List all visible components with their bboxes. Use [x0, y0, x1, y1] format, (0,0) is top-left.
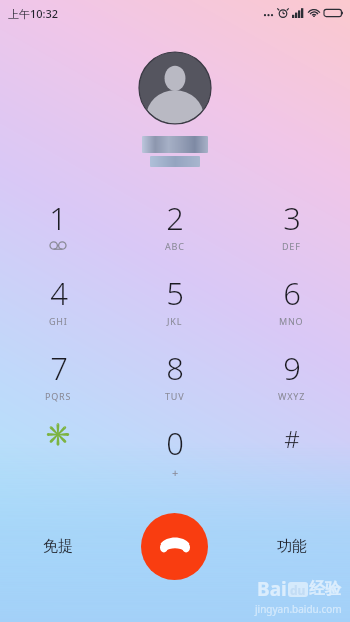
button[interactable]: # [233, 422, 350, 497]
staticText: ABC [165, 240, 185, 252]
button[interactable]: 9 [233, 347, 350, 422]
staticText: 免提 [43, 537, 73, 556]
staticText: WXYZ [278, 390, 306, 402]
staticText: GHI [49, 315, 68, 327]
staticText: jingyan.baidu.com [255, 602, 342, 616]
button[interactable]: 3 [233, 197, 350, 272]
staticText: # [284, 422, 300, 455]
staticText: DEF [282, 240, 301, 252]
button[interactable]: 5 [116, 272, 233, 347]
staticText: 3 [283, 197, 301, 239]
staticText: du [290, 582, 306, 597]
staticText: JKL [167, 315, 183, 327]
staticText: 7 [50, 347, 68, 389]
staticText: MNO [279, 315, 304, 327]
staticText: 4 [50, 272, 68, 314]
staticText: ✳ [44, 422, 72, 448]
button[interactable]: 8 [116, 347, 233, 422]
staticText: 功能 [277, 537, 307, 556]
staticText: 0 [166, 422, 184, 464]
staticText: 1 [49, 197, 67, 239]
button[interactable]: 免提 [0, 504, 116, 588]
staticText: 9 [283, 347, 301, 389]
button[interactable]: ✳ [0, 422, 116, 497]
button[interactable]: 7 [0, 347, 116, 422]
button[interactable]: 0 [116, 422, 233, 497]
button[interactable]: 6 [233, 272, 350, 347]
button[interactable]: 2 [116, 197, 233, 272]
button[interactable]: 1 [0, 197, 116, 272]
staticText: 经验 [309, 579, 341, 599]
staticText: TUV [165, 390, 185, 402]
button[interactable]: 功能 [233, 504, 350, 588]
staticText: + [172, 465, 179, 480]
staticText: PQRS [45, 390, 72, 402]
staticText: 6 [283, 272, 301, 314]
staticText: Bai [257, 576, 287, 602]
staticText: 上午10:32 [8, 6, 59, 21]
staticText: 8 [166, 347, 184, 389]
button[interactable]: End call [141, 513, 208, 580]
staticText: 5 [166, 272, 184, 314]
button[interactable]: 4 [0, 272, 116, 347]
staticText: 2 [166, 197, 184, 239]
